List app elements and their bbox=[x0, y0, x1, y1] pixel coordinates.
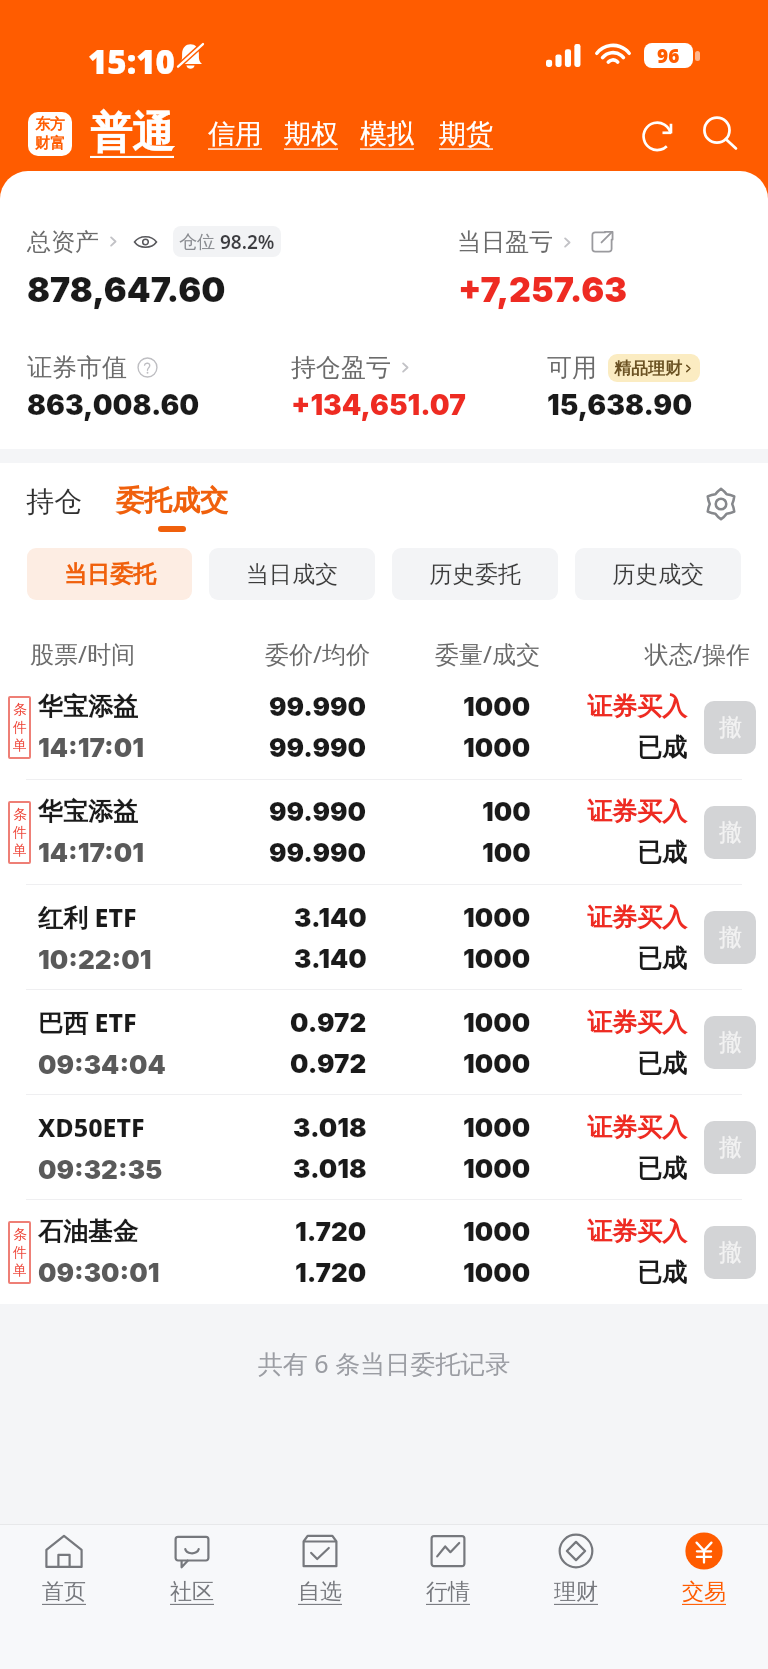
staticText: 总资产 bbox=[27, 227, 99, 257]
staticText: 华宝添益 bbox=[38, 691, 138, 722]
button[interactable]: 期货 bbox=[439, 117, 493, 151]
staticText: 1.720 bbox=[295, 1257, 367, 1288]
staticText: 已成 bbox=[637, 732, 687, 763]
staticText: 当日盈亏 bbox=[457, 227, 553, 257]
staticText: 已成 bbox=[637, 943, 687, 974]
staticText: 理财 bbox=[554, 1578, 598, 1606]
button[interactable]: Settings bbox=[698, 481, 744, 527]
staticText: 共有 6 条当日委托记录 bbox=[0, 1346, 768, 1380]
staticText: 撤 bbox=[719, 713, 742, 742]
staticText: 撤 bbox=[719, 923, 742, 952]
staticText: 期货 bbox=[439, 117, 493, 151]
button[interactable]: 红利 ETF bbox=[0, 885, 768, 989]
button[interactable]: 条 bbox=[0, 780, 768, 884]
staticText: 100 bbox=[482, 837, 531, 868]
staticText: 已成 bbox=[637, 1257, 687, 1288]
staticText: 交易 bbox=[682, 1578, 726, 1606]
button[interactable]: 撤 bbox=[704, 701, 756, 754]
staticText: 0.972 bbox=[290, 1048, 367, 1079]
button[interactable]: 撤 bbox=[704, 1016, 756, 1069]
button[interactable]: 委托成交 bbox=[114, 483, 230, 532]
staticText: 历史委托 bbox=[429, 560, 521, 589]
staticText: 当日委托 bbox=[64, 560, 156, 589]
button[interactable]: 期权 bbox=[284, 117, 338, 151]
staticText: 已成 bbox=[637, 1048, 687, 1079]
staticText: 条 bbox=[13, 806, 27, 824]
staticText: 1000 bbox=[463, 732, 531, 763]
staticText: 历史成交 bbox=[612, 560, 704, 589]
staticText: 1000 bbox=[463, 943, 531, 974]
staticText: 99.990 bbox=[269, 732, 367, 763]
staticText: 09:34:04 bbox=[38, 1049, 166, 1080]
staticText: 股票/时间 bbox=[30, 637, 240, 670]
staticText: 1000 bbox=[463, 1007, 531, 1038]
staticText: 99.990 bbox=[269, 691, 367, 722]
staticText: 0.972 bbox=[290, 1007, 367, 1038]
staticText: 09:30:01 bbox=[38, 1257, 160, 1288]
staticText: 1000 bbox=[463, 1048, 531, 1079]
staticText: 证券买入 bbox=[587, 1112, 687, 1143]
button[interactable]: 交易 bbox=[640, 1525, 768, 1669]
button[interactable]: 理财 bbox=[512, 1525, 640, 1669]
button[interactable]: 撤 bbox=[704, 806, 756, 859]
button[interactable]: 持仓 bbox=[24, 483, 84, 520]
staticText: XD50ETF bbox=[38, 1110, 145, 1144]
staticText: 3.018 bbox=[293, 1153, 367, 1184]
staticText: 期权 bbox=[284, 117, 338, 151]
button[interactable]: 当日成交 bbox=[209, 548, 375, 600]
button[interactable]: 模拟 bbox=[360, 117, 414, 151]
staticText: 撤 bbox=[719, 1028, 742, 1057]
button[interactable]: 条 bbox=[0, 1200, 768, 1304]
button[interactable]: 历史成交 bbox=[575, 548, 741, 600]
button[interactable]: 信用 bbox=[208, 117, 262, 151]
button[interactable]: 普通 bbox=[90, 107, 174, 160]
staticText: 撤 bbox=[719, 1238, 742, 1267]
staticText: 09:32:35 bbox=[38, 1154, 163, 1185]
staticText: 首页 bbox=[42, 1578, 86, 1606]
staticText: 1000 bbox=[463, 1216, 531, 1247]
staticText: 1000 bbox=[463, 1112, 531, 1143]
staticText: 可用 bbox=[547, 352, 597, 383]
button[interactable]: 历史委托 bbox=[392, 548, 558, 600]
staticText: 自选 bbox=[298, 1578, 342, 1606]
staticText: 1000 bbox=[463, 1153, 531, 1184]
staticText: 仓位 bbox=[179, 231, 215, 254]
staticText: 红利 ETF bbox=[38, 900, 137, 934]
staticText: 财富 bbox=[35, 134, 65, 153]
button[interactable]: 自选 bbox=[256, 1525, 384, 1669]
staticText: 模拟 bbox=[360, 117, 414, 151]
staticText: 3.140 bbox=[294, 943, 367, 974]
staticText: +134,651.07 bbox=[291, 388, 466, 422]
button[interactable]: 行情 bbox=[384, 1525, 512, 1669]
staticText: 已成 bbox=[637, 837, 687, 868]
button[interactable]: 撤 bbox=[704, 1121, 756, 1174]
staticText: 石油基金 bbox=[38, 1216, 138, 1247]
staticText: 3.018 bbox=[293, 1112, 367, 1143]
staticText: 撤 bbox=[719, 818, 742, 847]
staticText: 持仓 bbox=[26, 484, 82, 519]
button[interactable]: 社区 bbox=[128, 1525, 256, 1669]
staticText: 14:17:01 bbox=[38, 837, 144, 868]
staticText: 证券买入 bbox=[587, 902, 687, 933]
button[interactable]: Search bbox=[698, 112, 742, 156]
button[interactable]: 巴西 ETF bbox=[0, 990, 768, 1094]
button[interactable]: 当日委托 bbox=[27, 548, 192, 600]
button[interactable]: 首页 bbox=[0, 1525, 128, 1669]
staticText: 3.140 bbox=[294, 902, 367, 933]
staticText: 1000 bbox=[463, 1257, 531, 1288]
button[interactable]: 仓位 bbox=[173, 226, 281, 257]
staticText: 14:17:01 bbox=[38, 732, 144, 763]
staticText: 精品理财 bbox=[614, 358, 682, 379]
button[interactable]: 条 bbox=[0, 675, 768, 779]
button[interactable]: 撤 bbox=[704, 1226, 756, 1279]
staticText: 件 bbox=[13, 1244, 27, 1262]
button[interactable]: 精品理财 bbox=[608, 354, 700, 382]
button[interactable]: 撤 bbox=[704, 911, 756, 964]
button[interactable]: Refresh bbox=[637, 112, 681, 156]
staticText: 100 bbox=[482, 796, 531, 827]
staticText: 已成 bbox=[637, 1153, 687, 1184]
staticText: 1.720 bbox=[295, 1216, 367, 1247]
staticText: 普通 bbox=[90, 107, 174, 160]
staticText: 件 bbox=[13, 824, 27, 842]
button[interactable]: XD50ETF bbox=[0, 1095, 768, 1199]
